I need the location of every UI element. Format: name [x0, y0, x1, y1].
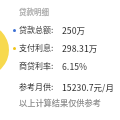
staticText: 15230.7元/月	[62, 81, 114, 93]
staticText: 支付利息:	[19, 42, 54, 54]
staticText: 250万	[62, 24, 86, 36]
button[interactable]: 商贷利率:	[0, 60, 120, 72]
button[interactable]: 支付利息:	[0, 42, 120, 54]
staticText: 贷款总额:	[19, 24, 54, 36]
staticText: 298.31万	[62, 42, 98, 54]
staticText: 参考月供:	[19, 81, 54, 93]
staticText: 贷款明细	[19, 6, 49, 17]
staticText: 6.15%	[62, 60, 88, 72]
button[interactable]: 贷款总额:	[0, 24, 120, 36]
staticText: 商贷利率:	[19, 60, 54, 72]
staticText: 以上计算结果仅供参考	[19, 96, 101, 108]
button[interactable]: 参考月供:	[0, 81, 120, 93]
